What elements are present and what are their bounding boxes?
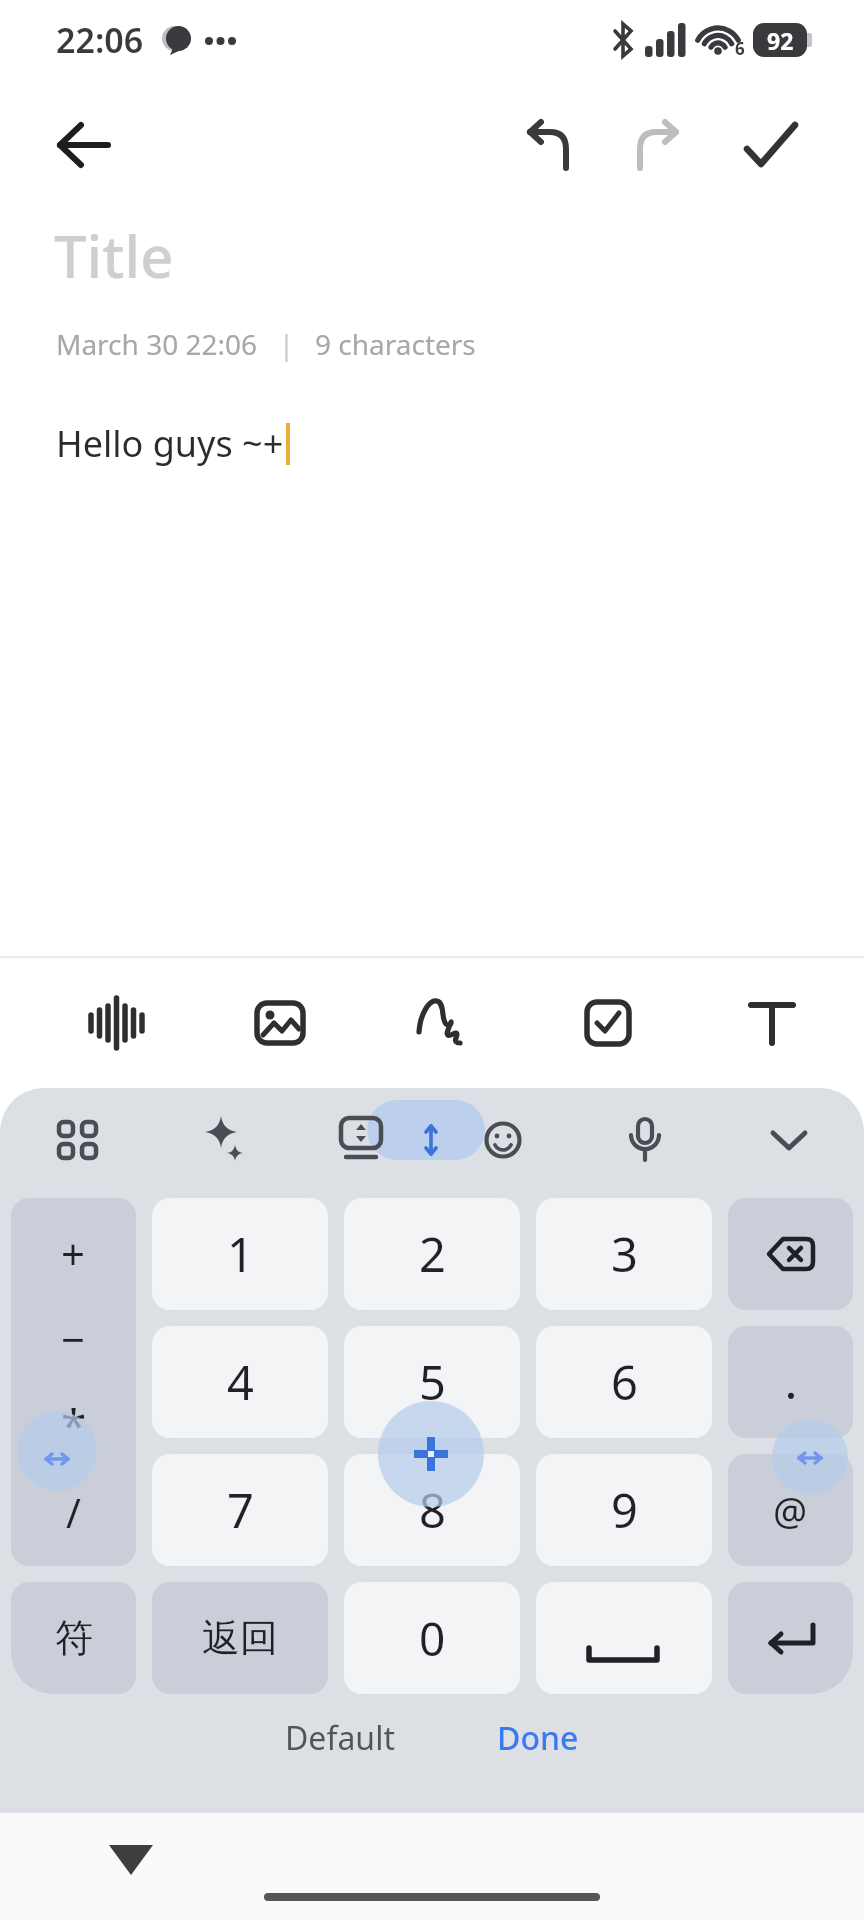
staticText: 92: [767, 25, 794, 56]
button[interactable]: [728, 1198, 853, 1310]
button[interactable]: 6: [536, 1326, 712, 1438]
button[interactable]: 2: [344, 1198, 520, 1310]
staticText: 3: [611, 1222, 638, 1286]
button[interactable]: [109, 1845, 153, 1877]
staticText: 1: [227, 1222, 254, 1286]
staticText: 0: [419, 1607, 446, 1670]
button[interactable]: [484, 1121, 522, 1159]
staticText: |: [279, 326, 294, 363]
button[interactable]: 8: [344, 1454, 520, 1566]
button[interactable]: 返回: [152, 1582, 328, 1694]
button[interactable]: 5: [344, 1326, 520, 1438]
button[interactable]: 0: [344, 1582, 520, 1694]
button[interactable]: [34, 958, 198, 1088]
button[interactable]: [536, 1582, 712, 1694]
button[interactable]: [55, 1117, 99, 1161]
staticText: March 30 22:06: [56, 325, 258, 363]
button[interactable]: Default: [285, 1716, 395, 1760]
button[interactable]: @: [728, 1454, 853, 1566]
staticText: 返回: [202, 1614, 278, 1662]
button[interactable]: 1: [152, 1198, 328, 1310]
button[interactable]: [58, 123, 110, 167]
button[interactable]: .: [728, 1326, 853, 1438]
button[interactable]: 3: [536, 1198, 712, 1310]
staticText: 符: [55, 1614, 93, 1662]
button[interactable]: 符: [11, 1582, 136, 1694]
button[interactable]: [626, 1117, 664, 1163]
button[interactable]: [770, 1130, 808, 1152]
staticText: Hello guys ~+: [56, 419, 284, 468]
staticText: @: [773, 1484, 808, 1536]
staticText: 7: [227, 1478, 254, 1542]
button[interactable]: 4: [152, 1326, 328, 1438]
button[interactable]: +: [11, 1198, 136, 1566]
staticText: .: [785, 1352, 797, 1412]
button[interactable]: 9: [536, 1454, 712, 1566]
button[interactable]: [362, 958, 526, 1088]
staticText: /: [66, 1485, 81, 1539]
staticText: 5: [419, 1350, 446, 1414]
button[interactable]: [728, 1582, 853, 1694]
staticText: 2: [419, 1222, 446, 1286]
button[interactable]: [690, 958, 854, 1088]
staticText: 8: [419, 1478, 446, 1542]
staticText: 6: [611, 1350, 638, 1414]
staticText: Title: [54, 216, 174, 295]
staticText: 6: [735, 37, 745, 60]
button[interactable]: [526, 958, 690, 1088]
button[interactable]: [744, 120, 798, 170]
button[interactable]: [202, 1115, 246, 1163]
button[interactable]: Done: [497, 1716, 579, 1760]
staticText: 9 characters: [315, 325, 476, 363]
button[interactable]: 7: [152, 1454, 328, 1566]
staticText: 4: [227, 1350, 254, 1414]
staticText: 22:06: [56, 17, 144, 63]
button[interactable]: [338, 1115, 384, 1161]
button[interactable]: [634, 121, 682, 169]
button[interactable]: [524, 121, 572, 169]
staticText: +: [61, 1225, 86, 1282]
staticText: 9: [611, 1478, 638, 1542]
staticText: −: [61, 1310, 86, 1367]
button[interactable]: [420, 1121, 442, 1159]
button[interactable]: [198, 958, 362, 1088]
staticText: *: [61, 1394, 87, 1457]
